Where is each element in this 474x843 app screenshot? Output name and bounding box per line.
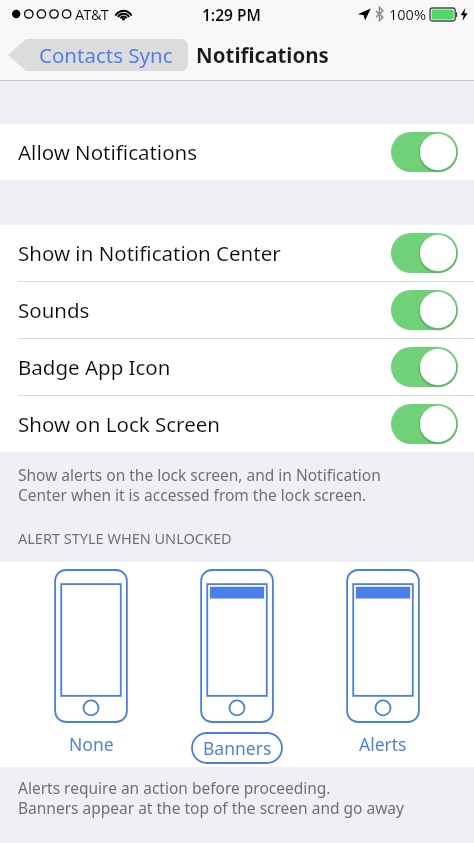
staticText: 100% xyxy=(389,4,426,24)
staticText: AT&T xyxy=(75,4,109,24)
staticText: Sounds xyxy=(18,296,391,324)
button[interactable]: Toggle on xyxy=(391,233,458,273)
staticText: Allow Notifications xyxy=(18,138,391,166)
staticText: Contacts Sync xyxy=(39,41,173,69)
button[interactable]: Toggle on xyxy=(391,347,458,387)
staticText: Alerts xyxy=(359,732,407,756)
staticText: Show alerts on the lock screen, and in N… xyxy=(18,464,381,506)
button[interactable]: Show in Notification Center xyxy=(0,225,474,281)
button[interactable]: Alerts xyxy=(328,570,438,756)
button[interactable]: None xyxy=(36,570,146,756)
button[interactable]: Banners xyxy=(182,570,292,764)
staticText: Alerts require an action before proceedi… xyxy=(18,777,404,819)
button[interactable]: Badge App Icon xyxy=(0,339,474,395)
staticText: None xyxy=(69,732,114,756)
staticText: Banners xyxy=(203,736,272,760)
staticText: ALERT STYLE WHEN UNLOCKED xyxy=(18,528,232,548)
staticText: Badge App Icon xyxy=(18,353,391,381)
button[interactable]: Toggle on xyxy=(391,290,458,330)
button[interactable]: Toggle on xyxy=(391,404,458,444)
staticText: Notifications xyxy=(196,41,329,69)
button[interactable]: Sounds xyxy=(0,282,474,338)
button[interactable]: Toggle on xyxy=(391,132,458,172)
staticText: Show in Notification Center xyxy=(18,239,391,267)
staticText: 1:29 PM xyxy=(202,4,261,25)
staticText: Show on Lock Screen xyxy=(18,410,391,438)
button[interactable]: Show on Lock Screen xyxy=(0,396,474,452)
button[interactable]: Allow Notifications xyxy=(0,124,474,180)
button[interactable]: Back to Contacts Sync xyxy=(8,37,188,73)
